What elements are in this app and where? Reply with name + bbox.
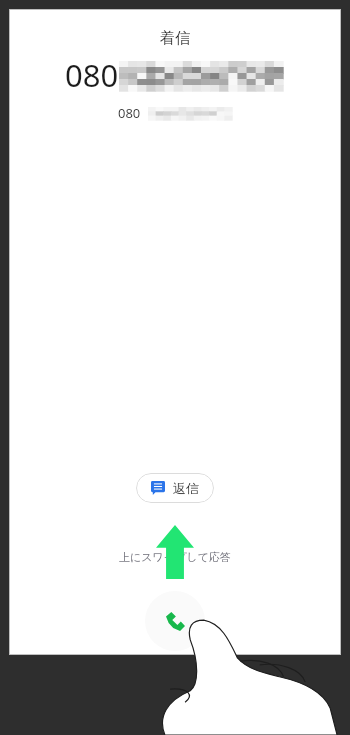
button[interactable]: 応答 [145, 591, 205, 651]
staticText: 080 [65, 54, 119, 96]
staticText: 080 [118, 104, 141, 122]
button[interactable]: 返信 [136, 473, 214, 503]
staticText: 返信 [173, 480, 199, 496]
staticText: 着信 [160, 29, 190, 48]
staticText: 上にスワイプして応答 [119, 550, 231, 564]
